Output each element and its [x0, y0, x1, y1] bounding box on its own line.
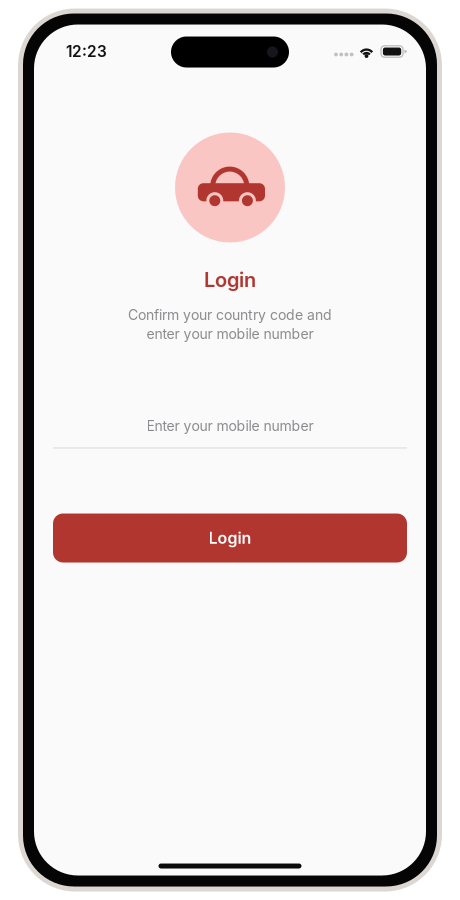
staticText: Confirm your country code and: [128, 306, 332, 323]
staticText: 12:23: [66, 42, 107, 61]
staticText: Enter your mobile number: [146, 417, 313, 434]
staticText: Login: [204, 267, 256, 292]
staticText: enter your mobile number: [146, 325, 313, 342]
staticText: Login: [208, 528, 251, 548]
button[interactable]: Login: [53, 513, 407, 562]
